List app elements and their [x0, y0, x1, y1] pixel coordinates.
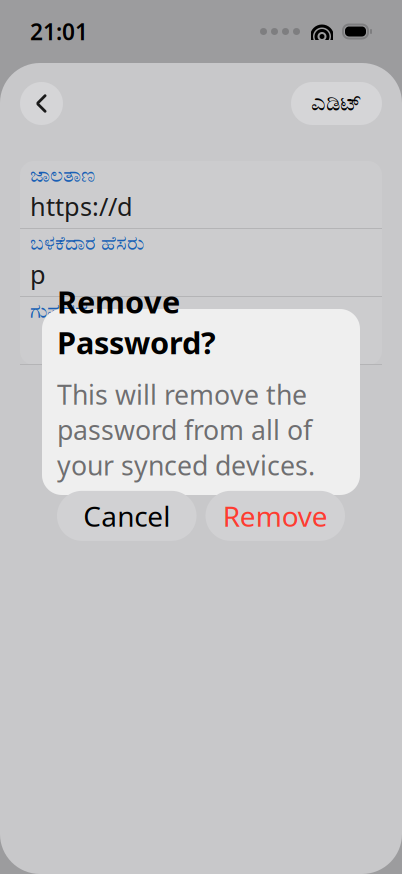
button[interactable]: ಜಾಲತಾಣ [20, 161, 382, 228]
staticText: This will remove the password from all o… [57, 377, 315, 483]
staticText: ಎಡಿಟ್ [311, 92, 362, 114]
button[interactable]: ಬಳಕೆದಾರ ಹೆಸರು [20, 229, 382, 296]
staticText: ಗುಪ್ತಪದ [30, 302, 88, 321]
staticText: Remove Password? [57, 281, 216, 363]
staticText: Remove [223, 497, 328, 534]
button[interactable]: Back [20, 82, 63, 125]
staticText: p [30, 257, 46, 291]
button[interactable]: ಎಡಿಟ್ [291, 82, 382, 125]
button[interactable]: Cancel [57, 491, 196, 541]
staticText: ಬಳಕೆದಾರ ಹೆಸರು [30, 234, 144, 253]
button[interactable]: ಗುಪ್ತಪದ [20, 297, 382, 364]
staticText: https://d [30, 189, 133, 223]
staticText: Cancel [83, 497, 170, 534]
staticText: ಜಾಲತಾಣ [30, 166, 95, 185]
staticText: 21:01 [30, 16, 88, 46]
button[interactable]: Remove [205, 491, 345, 541]
